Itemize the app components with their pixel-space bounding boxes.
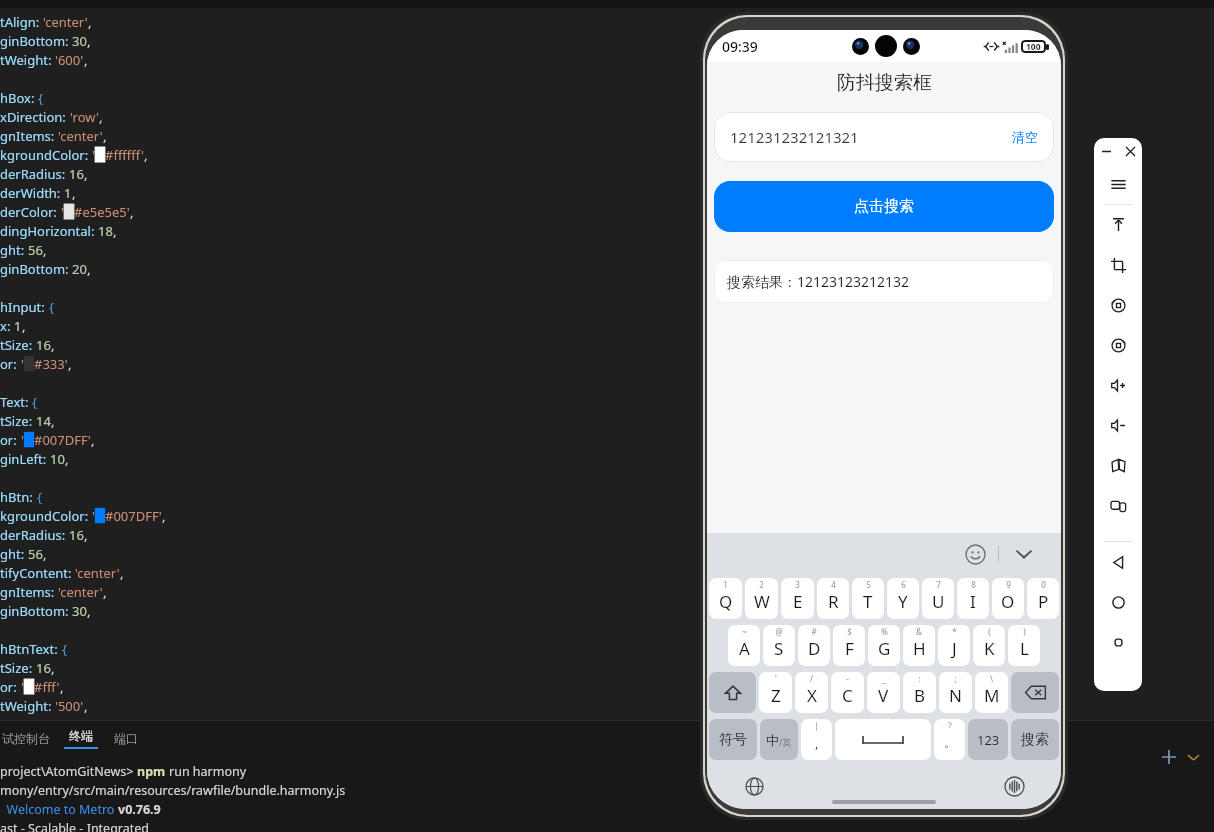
button[interactable]: 符号	[709, 719, 757, 760]
button[interactable]: 123	[968, 719, 1008, 760]
button[interactable]: Emoji	[960, 539, 990, 569]
staticText: tSize:	[0, 412, 36, 430]
staticText: ,	[815, 734, 819, 752]
button[interactable]: 2	[745, 578, 778, 619]
staticText: 30	[72, 602, 87, 620]
staticText: H	[913, 637, 926, 660]
button[interactable]: Rotate left	[1094, 285, 1142, 325]
button[interactable]: Shift	[709, 672, 756, 713]
button[interactable]: Home	[1094, 582, 1142, 622]
button[interactable]: Minimize	[1098, 143, 1114, 159]
staticText: {	[38, 89, 43, 107]
button[interactable]: Backspace	[1011, 672, 1059, 713]
button[interactable]: Voice input	[999, 771, 1029, 801]
button[interactable]: 9	[992, 578, 1024, 619]
staticText: 1	[14, 317, 22, 335]
staticText: @	[775, 626, 783, 637]
button[interactable]: Menu	[1094, 164, 1142, 204]
staticText: ginBottom:	[0, 602, 72, 620]
button[interactable]: 试控制台	[2, 731, 50, 746]
button[interactable]: 端口	[114, 731, 138, 746]
staticText: ,	[88, 13, 92, 31]
button[interactable]: Language	[739, 771, 769, 801]
staticText: T	[863, 590, 873, 613]
button[interactable]: Multi screen	[1094, 485, 1142, 525]
staticText: 'center'	[75, 564, 120, 582]
button[interactable]: *	[938, 625, 970, 666]
button[interactable]: 终端	[64, 728, 98, 749]
button[interactable]: 1	[709, 578, 742, 619]
staticText: (	[988, 626, 991, 637]
staticText: J	[952, 637, 957, 660]
staticText: 搜索结果：12123123212132	[727, 272, 910, 291]
button[interactable]: 0	[1027, 578, 1059, 619]
staticText: kgroundColor:	[0, 507, 92, 525]
button[interactable]: -	[831, 672, 864, 713]
staticText: or:	[0, 431, 21, 449]
staticText: #fff'	[34, 678, 60, 696]
button[interactable]: ？	[934, 719, 965, 760]
button[interactable]: 6	[887, 578, 919, 619]
button[interactable]: $	[833, 625, 865, 666]
button[interactable]: 7	[922, 578, 954, 619]
button[interactable]: _	[867, 672, 900, 713]
staticText: dingHorizontal:	[0, 222, 98, 240]
button[interactable]: @	[763, 625, 795, 666]
button[interactable]: Recents	[1094, 622, 1142, 662]
button[interactable]: Screenshot	[1094, 205, 1142, 245]
staticText: 16	[36, 336, 51, 354]
staticText: F	[845, 637, 854, 660]
staticText: ,	[51, 659, 55, 677]
button[interactable]: %	[868, 625, 900, 666]
button[interactable]: '	[759, 672, 792, 713]
staticText: 1	[64, 184, 72, 202]
button[interactable]: 121231232121321	[714, 112, 1054, 162]
button[interactable]: More	[1182, 746, 1204, 768]
button[interactable]: |	[801, 719, 832, 760]
button[interactable]: 5	[852, 578, 884, 619]
staticText: 点击搜索	[854, 197, 914, 216]
staticText: '	[92, 146, 95, 164]
button[interactable]: Fold	[1094, 445, 1142, 485]
button[interactable]: ;	[939, 672, 972, 713]
button[interactable]: 3	[781, 578, 814, 619]
button[interactable]: \	[975, 672, 1008, 713]
button[interactable]: Crop	[1094, 245, 1142, 285]
button[interactable]: Back	[1094, 542, 1142, 582]
button[interactable]: 点击搜索	[714, 181, 1054, 232]
staticText: O	[1001, 590, 1015, 613]
button[interactable]: #	[798, 625, 830, 666]
staticText: D	[808, 637, 821, 660]
button[interactable]: Rotate right	[1094, 325, 1142, 365]
staticText: {	[37, 488, 42, 506]
staticText: derWidth:	[0, 184, 64, 202]
staticText: ,	[51, 412, 55, 430]
button[interactable]: 8	[957, 578, 989, 619]
button[interactable]: Volume down	[1094, 405, 1142, 445]
button[interactable]: Hide keyboard	[1009, 539, 1039, 569]
button[interactable]: /	[795, 672, 828, 713]
staticText: '	[21, 355, 24, 373]
staticText: 防抖搜索框	[837, 71, 932, 95]
button[interactable]: Close	[1122, 143, 1138, 159]
staticText: kgroundColor:	[0, 146, 92, 164]
button[interactable]: 中	[760, 719, 798, 760]
staticText: x:	[0, 317, 14, 335]
staticText: 。	[944, 735, 956, 750]
button[interactable]: )	[1008, 625, 1040, 666]
button[interactable]: 搜索结果：12123123212132	[714, 260, 1054, 303]
staticText: tWeight:	[0, 697, 55, 715]
button[interactable]: 搜索	[1011, 719, 1059, 760]
button[interactable]: Volume up	[1094, 365, 1142, 405]
button[interactable]: Space	[835, 719, 931, 760]
staticText: I	[970, 590, 976, 613]
button[interactable]: ~	[728, 625, 760, 666]
button[interactable]: 4	[817, 578, 849, 619]
button[interactable]: 清空	[1012, 129, 1038, 145]
button[interactable]: :	[903, 672, 936, 713]
button[interactable]: &	[903, 625, 935, 666]
button[interactable]: (	[973, 625, 1005, 666]
button[interactable]: New terminal	[1156, 744, 1182, 770]
